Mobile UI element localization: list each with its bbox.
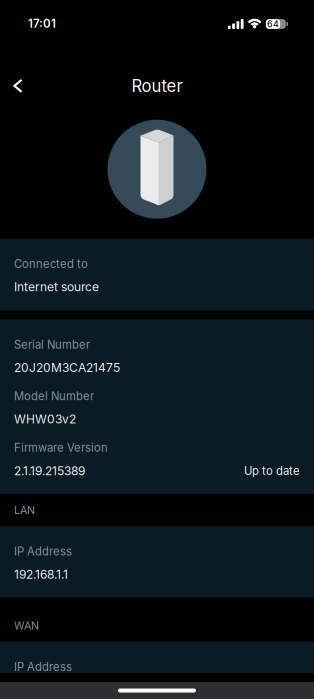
button[interactable]: Back: [2, 69, 34, 103]
staticText: WAN: [14, 619, 39, 632]
staticText: Serial Number: [14, 338, 90, 351]
staticText: IP Address: [14, 660, 72, 674]
staticText: Firmware Version: [14, 441, 108, 455]
staticText: 2.1.19.215389: [14, 463, 85, 478]
staticText: Up to date: [244, 464, 300, 478]
staticText: LAN: [14, 504, 35, 516]
staticText: 192.168.1.1: [14, 567, 68, 582]
staticText: Connected to: [14, 257, 88, 271]
staticText: Internet source: [14, 280, 99, 294]
staticText: Router: [131, 76, 182, 96]
staticText: 20J20M3CA21475: [14, 360, 120, 375]
staticText: WHW03v2: [14, 412, 76, 426]
staticText: Model Number: [14, 389, 94, 403]
staticText: 17:01: [28, 17, 56, 31]
staticText: 64: [267, 19, 279, 29]
staticText: IP Address: [14, 545, 72, 558]
